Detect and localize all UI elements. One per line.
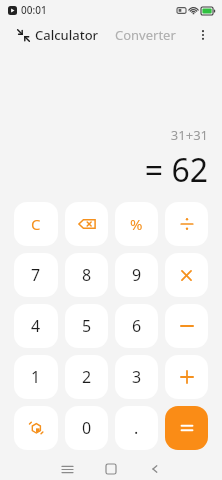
button[interactable]: Calculator (31, 23, 103, 47)
staticText: 00:01 (21, 3, 47, 17)
staticText: % (130, 214, 143, 234)
button[interactable]: 4 (14, 304, 58, 348)
button[interactable]: Back (133, 458, 177, 480)
button[interactable]: 1 (14, 355, 58, 399)
button[interactable]: Backspace (65, 202, 108, 246)
button[interactable]: 7 (14, 253, 58, 297)
staticText: . (134, 417, 139, 439)
button[interactable]: Unit convert (14, 406, 58, 450)
button[interactable]: Recent apps (45, 458, 89, 480)
button[interactable]: More options (192, 24, 214, 46)
staticText: 5 (82, 315, 92, 337)
staticText: Converter (115, 26, 176, 44)
button[interactable]: 9 (115, 253, 158, 297)
staticText: 4 (31, 315, 41, 337)
staticText: 8 (82, 264, 92, 286)
staticText: 31+31 (170, 126, 208, 144)
button[interactable]: 6 (115, 304, 158, 348)
button[interactable]: 3 (115, 355, 158, 399)
staticText: 9 (132, 264, 142, 286)
button[interactable]: Equals (165, 406, 208, 450)
staticText: = 62 (144, 148, 208, 192)
staticText: Calculator (35, 26, 99, 44)
button[interactable]: 2 (65, 355, 108, 399)
staticText: C (31, 214, 41, 234)
button[interactable]: Minus (165, 304, 208, 348)
button[interactable]: 8 (65, 253, 108, 297)
staticText: 2 (82, 366, 92, 388)
button[interactable]: Collapse (12, 24, 34, 46)
button[interactable]: Plus (165, 355, 208, 399)
button[interactable]: . (115, 406, 158, 450)
button[interactable]: 5 (65, 304, 108, 348)
button[interactable]: Home (89, 458, 133, 480)
button[interactable]: Converter (111, 23, 180, 47)
staticText: 3 (132, 366, 142, 388)
staticText: 0 (82, 417, 92, 439)
staticText: 6 (132, 315, 142, 337)
button[interactable]: 0 (65, 406, 108, 450)
button[interactable]: Multiply (165, 253, 208, 297)
staticText: 1 (31, 366, 41, 388)
button[interactable]: % (115, 202, 158, 246)
staticText: 7 (31, 264, 41, 286)
button[interactable]: Divide (165, 202, 208, 246)
button[interactable]: C (14, 202, 58, 246)
